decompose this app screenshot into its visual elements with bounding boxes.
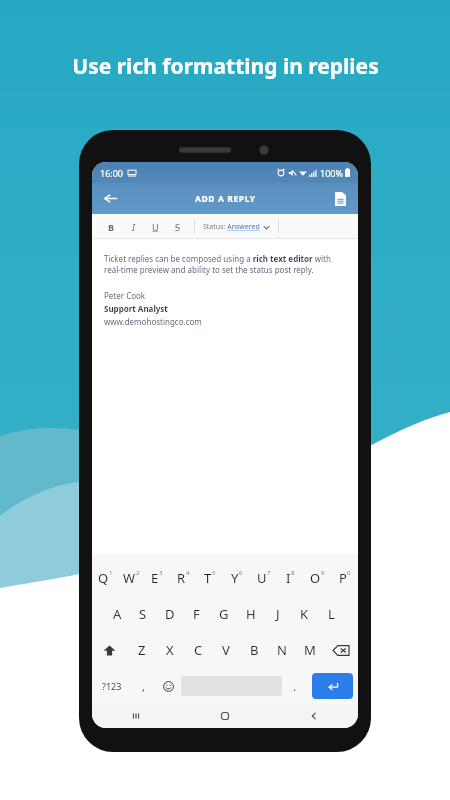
staticText: 6 [239, 569, 243, 577]
button[interactable]: G [210, 596, 237, 632]
staticText: P [339, 569, 347, 587]
staticText: J [276, 605, 280, 623]
staticText: 9 [321, 569, 325, 577]
staticText: B [108, 221, 114, 233]
staticText: S [139, 605, 147, 623]
staticText: D [165, 605, 175, 623]
staticText: N [277, 641, 287, 659]
staticText: X [166, 641, 174, 659]
staticText: 0 [347, 569, 351, 577]
staticText: I [132, 221, 135, 233]
button[interactable]: Back [92, 183, 128, 214]
button[interactable]: Back [269, 704, 358, 728]
staticText: 16:00 [100, 167, 124, 179]
button[interactable]: K [291, 596, 318, 632]
button[interactable]: Recents [92, 704, 180, 728]
staticText: O [310, 569, 321, 587]
button[interactable]: ?123 [92, 668, 131, 704]
staticText: Ticket replies can be composed using a r… [104, 253, 346, 276]
staticText: 8 [291, 569, 295, 577]
staticText: Q [98, 569, 109, 587]
button[interactable]: C [184, 632, 212, 668]
button[interactable]: P [331, 560, 358, 596]
staticText: U [152, 221, 159, 233]
button[interactable]: I [277, 560, 304, 596]
staticText: L [328, 605, 335, 623]
button[interactable]: R [170, 560, 196, 596]
staticText: Z [138, 641, 146, 659]
button[interactable]: Save draft [322, 183, 358, 214]
button[interactable]: V [212, 632, 240, 668]
staticText: ?123 [102, 680, 122, 692]
staticText: Support Analyst [104, 303, 168, 314]
button[interactable]: U [144, 216, 166, 238]
staticText: Status: Answered [203, 222, 260, 232]
button[interactable]: B [100, 216, 122, 238]
button[interactable]: M [296, 632, 324, 668]
staticText: U [257, 569, 267, 587]
button[interactable]: Status: Answered [203, 222, 270, 232]
staticText: , [142, 679, 145, 694]
button[interactable]: A [104, 596, 130, 632]
staticText: 5 [212, 569, 216, 577]
staticText: B [250, 641, 259, 659]
staticText: . [293, 679, 296, 694]
staticText: Peter Cook [104, 290, 146, 301]
button[interactable]: , [131, 668, 156, 704]
button[interactable]: . [282, 668, 307, 704]
button[interactable]: H [237, 596, 264, 632]
button[interactable]: Y [223, 560, 250, 596]
button[interactable]: Q [92, 560, 118, 596]
staticText: I [286, 569, 291, 587]
button[interactable]: Shift [92, 632, 127, 668]
staticText: E [151, 569, 159, 587]
staticText: F [193, 605, 200, 623]
button[interactable]: S [130, 596, 156, 632]
button[interactable]: F [183, 596, 210, 632]
staticText: C [194, 641, 203, 659]
staticText: 4 [186, 569, 190, 577]
staticText: G [219, 605, 229, 623]
button[interactable]: O [304, 560, 331, 596]
button[interactable]: U [250, 560, 277, 596]
staticText: 3 [159, 569, 163, 577]
staticText: K [300, 605, 309, 623]
button[interactable]: X [156, 632, 184, 668]
staticText: www.demohostingco.com [104, 316, 202, 327]
staticText: Use rich formatting in replies [72, 52, 379, 81]
staticText: 7 [267, 569, 271, 577]
staticText: 100% [320, 167, 343, 179]
button[interactable]: Backspace [324, 632, 358, 668]
button[interactable]: I [122, 216, 144, 238]
staticText: T [204, 569, 212, 587]
staticText: Y [231, 569, 239, 587]
button[interactable]: Enter [312, 673, 353, 699]
staticText: A [113, 605, 122, 623]
button[interactable]: L [318, 596, 345, 632]
button[interactable]: Z [127, 632, 156, 668]
staticText: H [246, 605, 256, 623]
staticText: V [222, 641, 230, 659]
staticText: S [175, 221, 180, 233]
button[interactable]: B [240, 632, 268, 668]
staticText: ADD A REPLY [195, 193, 256, 205]
button[interactable]: J [264, 596, 291, 632]
button[interactable]: Home [180, 704, 269, 728]
staticText: M [304, 641, 316, 659]
button[interactable]: T [196, 560, 223, 596]
button[interactable]: S [166, 216, 188, 238]
staticText: W [123, 569, 136, 587]
staticText: 1 [109, 569, 113, 577]
staticText: R [177, 569, 186, 587]
staticText: 2 [136, 569, 140, 577]
button[interactable]: E [144, 560, 170, 596]
button[interactable]: W [118, 560, 144, 596]
button[interactable]: Emoji [156, 668, 181, 704]
button[interactable]: D [156, 596, 183, 632]
button[interactable]: N [268, 632, 296, 668]
